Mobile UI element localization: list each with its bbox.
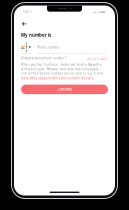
button[interactable]: LOG IN BY EMAIL	[87, 57, 108, 60]
staticText: Changed your phone number ?	[21, 56, 66, 60]
staticText: +91	[25, 41, 27, 53]
button[interactable]: +91	[21, 44, 33, 54]
staticText: The verified phone number can be used to…	[21, 72, 103, 75]
staticText: CONTINUE	[57, 87, 71, 91]
staticText: verification code. Message and data rate…	[21, 67, 99, 71]
staticText: Phone number	[36, 45, 59, 49]
staticText: When you tap 'Continue', Folder will sen…	[21, 63, 102, 66]
staticText: My number is	[21, 32, 51, 38]
button[interactable]: CONTINUE	[21, 85, 108, 94]
button[interactable]: Learn what happens when your number chan…	[21, 76, 94, 80]
staticText: LOG IN BY EMAIL	[87, 57, 108, 60]
staticText: 9:41	[23, 10, 30, 14]
staticText: Learn what happens when your number chan…	[21, 76, 94, 80]
button[interactable]: Back	[14, 18, 115, 29]
